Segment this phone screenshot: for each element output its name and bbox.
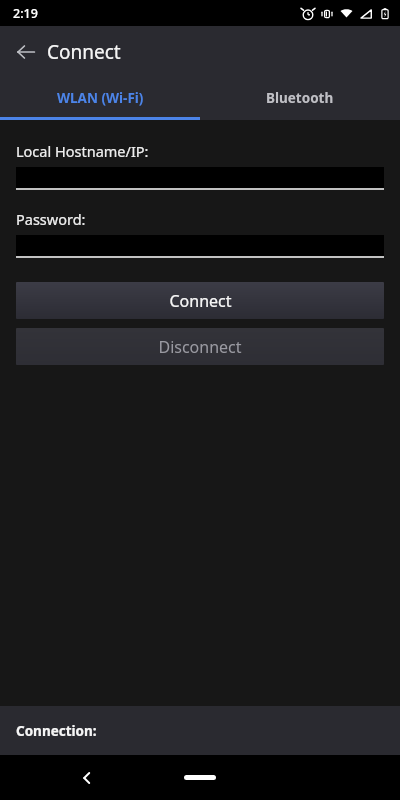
staticText: Connection: [16, 722, 97, 740]
staticText: Password: [16, 209, 400, 229]
button[interactable]: Back [8, 34, 44, 70]
button[interactable] [16, 235, 384, 258]
button[interactable] [16, 167, 384, 190]
staticText: Local Hostname/IP: [16, 141, 400, 161]
staticText: 2:19 [13, 5, 38, 22]
staticText: Disconnect [158, 336, 242, 358]
staticText: Connect [169, 290, 232, 312]
button[interactable]: Connect [16, 282, 384, 319]
button[interactable]: WLAN (Wi-Fi) [0, 78, 200, 117]
staticText: Connect [47, 39, 121, 65]
button[interactable]: Back [69, 760, 105, 796]
button[interactable]: Disconnect [16, 328, 384, 365]
button[interactable]: Home [184, 775, 216, 780]
staticText: Bluetooth [266, 89, 334, 107]
staticText: WLAN (Wi-Fi) [57, 89, 144, 107]
button[interactable]: Bluetooth [200, 78, 400, 117]
